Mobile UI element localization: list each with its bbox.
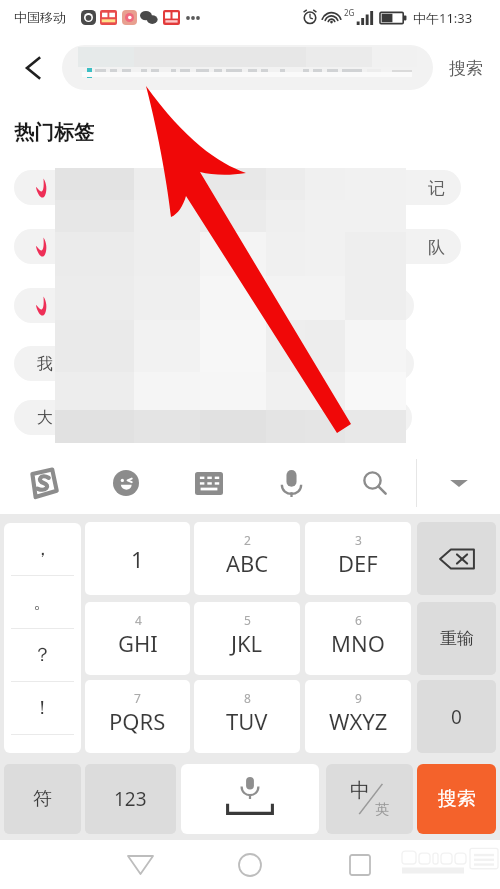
button[interactable]: 3 [305, 522, 411, 595]
button[interactable] [14, 229, 461, 264]
staticText: GHI [118, 628, 158, 658]
button[interactable]: Collapse keyboard [417, 452, 500, 514]
staticText: 队 [428, 237, 445, 258]
button[interactable]: ， [4, 523, 81, 575]
staticText: ， [33, 537, 52, 561]
button[interactable]: 4 [85, 602, 190, 675]
staticText: 1 [131, 544, 144, 574]
staticText: 大 [37, 408, 53, 428]
button[interactable]: Back [8, 42, 60, 94]
staticText: 3 [355, 532, 362, 548]
staticText: 符 [33, 787, 52, 811]
staticText: WXYZ [329, 706, 388, 736]
staticText: 2G [344, 7, 355, 18]
button[interactable]: Sogou input method [0, 452, 84, 514]
button[interactable]: ？ [4, 629, 81, 681]
button[interactable]: 6 [305, 602, 411, 675]
button[interactable] [14, 170, 461, 205]
staticText: 2 [244, 532, 251, 548]
button[interactable]: 0 [417, 680, 496, 753]
staticText: MNO [331, 628, 385, 658]
button[interactable]: 123 [85, 764, 176, 834]
staticText: ABC [226, 548, 269, 578]
button[interactable]: 搜索 [437, 42, 495, 94]
staticText: JKL [231, 628, 263, 658]
button[interactable]: 9 [305, 680, 411, 753]
staticText: 重输 [440, 628, 474, 649]
staticText: 9 [355, 690, 362, 706]
button[interactable]: 1 [85, 522, 190, 595]
button[interactable]: 5 [194, 602, 300, 675]
button[interactable]: Delete [417, 522, 496, 595]
staticText: 搜索 [438, 787, 476, 811]
button[interactable]: Keyboard layout [167, 452, 250, 514]
button[interactable]: 。 [4, 576, 81, 628]
staticText: 。 [33, 590, 52, 614]
button[interactable] [62, 45, 433, 90]
button[interactable]: 符 [4, 764, 81, 834]
button[interactable]: Back [100, 844, 180, 886]
button[interactable]: 中 [326, 764, 413, 834]
staticText: PQRS [109, 706, 166, 736]
staticText: 记 [428, 178, 445, 199]
button[interactable]: 7 [85, 680, 190, 753]
staticText: 4 [135, 612, 142, 628]
button[interactable]: Voice input space [181, 764, 319, 834]
staticText: ？ [33, 643, 52, 667]
staticText: ！ [33, 696, 52, 720]
staticText: 英 [375, 801, 389, 819]
staticText: DEF [338, 548, 378, 578]
button[interactable]: Home [210, 844, 290, 886]
button[interactable] [14, 288, 414, 323]
staticText: 中午11:33 [413, 9, 473, 27]
button[interactable]: 搜索 [417, 764, 496, 834]
button[interactable]: Search [333, 452, 416, 514]
staticText: 6 [355, 612, 362, 628]
button[interactable]: Voice input [250, 452, 333, 514]
button[interactable]: ！ [4, 682, 81, 734]
staticText: TUV [226, 706, 268, 736]
staticText: 我 [37, 354, 53, 374]
staticText: 7 [134, 690, 141, 706]
button[interactable]: 我 [14, 346, 414, 381]
staticText: 热门标签 [14, 120, 94, 145]
staticText: 中国移动 [14, 9, 66, 25]
staticText: 123 [114, 786, 147, 812]
staticText: 8 [244, 690, 251, 706]
staticText: 搜索 [449, 58, 483, 79]
button[interactable]: Recent apps [320, 844, 400, 886]
staticText: 0 [451, 704, 462, 730]
staticText: 5 [244, 612, 251, 628]
button[interactable]: 8 [194, 680, 300, 753]
button[interactable]: 重输 [417, 602, 496, 675]
button[interactable]: Emoji [84, 452, 167, 514]
staticText: 中 [350, 778, 370, 803]
button[interactable]: 2 [194, 522, 300, 595]
button[interactable]: 大 [14, 400, 412, 435]
